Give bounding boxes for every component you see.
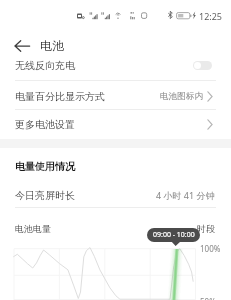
staticText: 今日亮屏时长 bbox=[15, 189, 75, 202]
staticText: 更多电池设置 bbox=[15, 118, 75, 131]
staticText: 50% bbox=[200, 296, 216, 300]
staticText: 电量使用情况 bbox=[15, 160, 75, 173]
button[interactable]: 今日亮屏时长 bbox=[0, 182, 231, 208]
staticText: 电池 bbox=[40, 38, 64, 53]
staticText: 12:25 bbox=[199, 10, 223, 22]
staticText: 时段 bbox=[197, 223, 215, 234]
button[interactable]: Back bbox=[11, 35, 32, 56]
button[interactable]: 无线反向充电 bbox=[0, 52, 231, 78]
button[interactable]: 电量百分比显示方式 bbox=[0, 83, 231, 109]
button[interactable]: 更多电池设置 bbox=[0, 111, 231, 137]
staticText: 电池电量 bbox=[15, 223, 51, 234]
staticText: 100% bbox=[200, 243, 221, 254]
staticText: 电量百分比显示方式 bbox=[15, 90, 105, 103]
staticText: 4 小时 41 分钟 bbox=[156, 189, 215, 201]
staticText: 电池图标内 bbox=[160, 91, 203, 102]
staticText: 09:00 - 10:00 bbox=[153, 230, 195, 240]
staticText: 无线反向充电 bbox=[15, 59, 75, 72]
